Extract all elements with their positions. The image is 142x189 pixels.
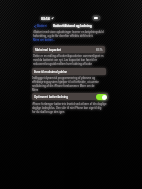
button[interactable]: Batteri — [33, 23, 48, 29]
button[interactable]: Optimeret batteriladning — [32, 93, 108, 100]
button[interactable]: Evne til maksimal ydelse — [32, 68, 106, 75]
staticText: Mere — [32, 88, 39, 92]
staticText: Maksimal kapacitet — [35, 48, 62, 52]
staticText: Batteri — [37, 24, 47, 28]
staticText: daglige ladecyklus. Den slår til når iPh… — [32, 106, 102, 110]
staticText: Evne til maksimal ydelse — [34, 70, 67, 74]
staticText: for du skal bruge den igen — [32, 110, 65, 114]
button[interactable]: Maksimal kapacitet — [33, 46, 105, 53]
staticText: Dette er en måling af batterikapaciteten… — [33, 54, 104, 58]
staticText: iPhone forlænger batteriets levetid ved … — [32, 102, 107, 106]
button[interactable]: Evne til maksimal ydelse — [32, 68, 106, 75]
staticText: Batteri — [37, 24, 47, 28]
staticText: Mere — [32, 88, 39, 92]
staticText: i Batteri med store opladninger leverer … — [33, 30, 104, 34]
staticText: med da batteriet var nyt. Lav kapacitet … — [33, 58, 98, 62]
staticText: reduceret brugstid mellem hver ladning a… — [33, 62, 93, 66]
button[interactable]: Optimeret batteriladning — [96, 94, 107, 100]
staticText: forbedring, og de får derefter effektiv … — [33, 34, 94, 38]
staticText: Maksimal kapacitet — [35, 48, 62, 52]
staticText: Mere om batteri… — [33, 38, 55, 42]
staticText: 03:14 — [41, 16, 50, 21]
staticText: Evne til maksimal ydelse — [34, 70, 67, 74]
staticText: Optimeret batteriladning — [34, 95, 69, 99]
button[interactable]: Optimeret batteriladning — [96, 94, 107, 100]
staticText: forbedring, og de får derefter effektiv … — [33, 34, 94, 38]
staticText: Optimeret batteriladning — [34, 95, 69, 99]
staticText: Indbygget dynamisk programmering af ydee… — [32, 76, 96, 80]
staticText: iPhone forlænger batteriets levetid ved … — [32, 102, 107, 106]
button[interactable]: Maksimal kapacitet — [33, 46, 105, 53]
staticText: Batteritilstand og ladning — [53, 24, 92, 28]
button[interactable]: Batteri — [33, 23, 48, 29]
staticText: i Batteri med store opladninger leverer … — [33, 30, 104, 34]
staticText: effektstyringssystem hjælper til at forh… — [32, 80, 99, 84]
staticText: 83 % — [96, 48, 103, 52]
staticText: effektstyringssystem hjælper til at forh… — [32, 80, 99, 84]
staticText: 83 % — [96, 48, 103, 52]
staticText: reduceret brugstid mellem hver ladning a… — [33, 62, 93, 66]
staticText: Mere om batteri… — [33, 38, 55, 42]
staticText: Batteritilstand og ladning — [53, 24, 92, 28]
staticText: med da batteriet var nyt. Lav kapacitet … — [33, 58, 98, 62]
staticText: Dette er en måling af batterikapaciteten… — [33, 54, 104, 58]
button[interactable]: Optimeret batteriladning — [32, 93, 108, 100]
staticText: for du skal bruge den igen — [32, 110, 65, 114]
staticText: nedlukning af din iPhone forekommer. Mer… — [32, 84, 95, 88]
staticText: nedlukning af din iPhone forekommer. Mer… — [32, 84, 95, 88]
staticText: 03:14 — [41, 16, 50, 21]
staticText: Indbygget dynamisk programmering af ydee… — [32, 76, 96, 80]
staticText: daglige ladecyklus. Den slår til når iPh… — [32, 106, 102, 110]
